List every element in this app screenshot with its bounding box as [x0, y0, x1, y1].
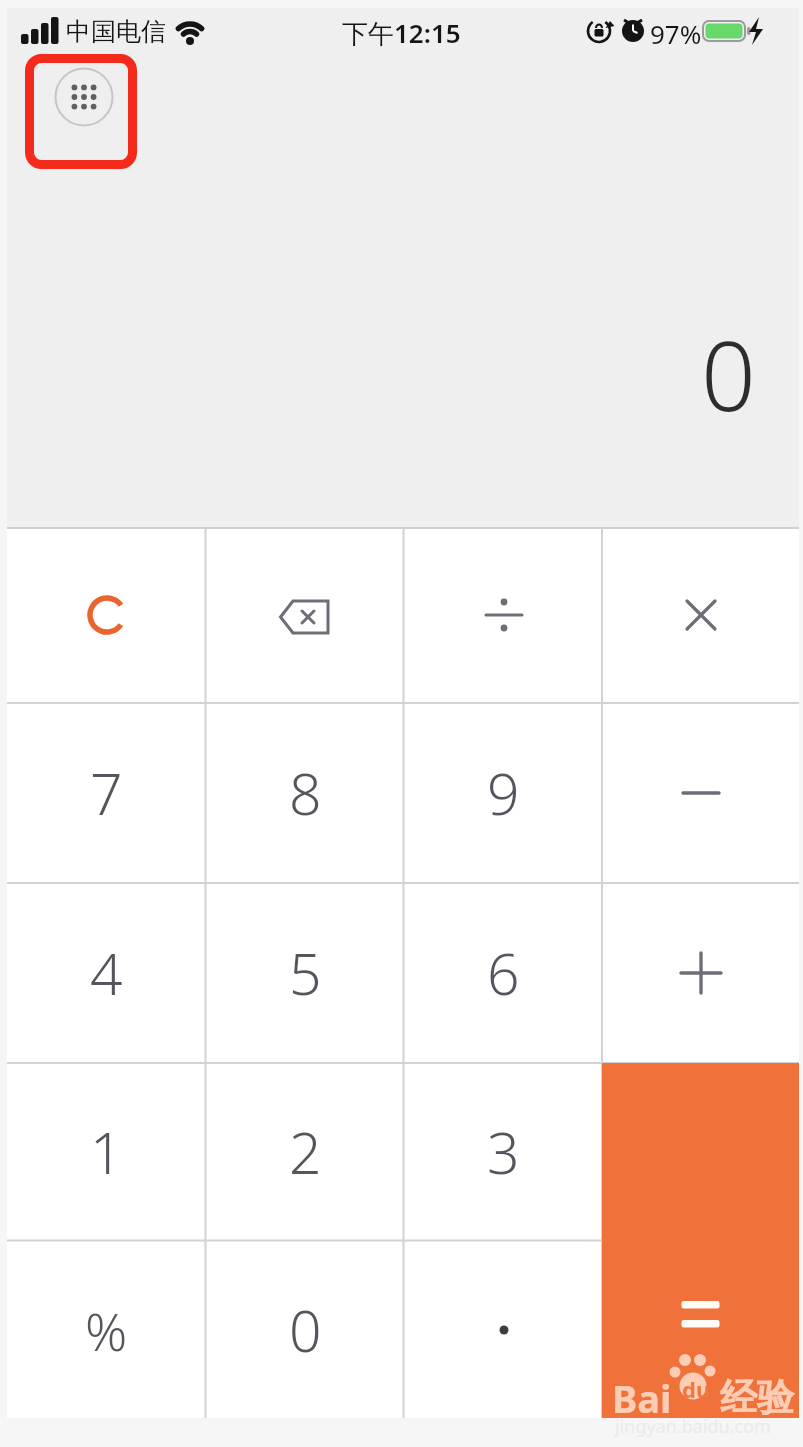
staticText: 8: [289, 754, 322, 832]
staticText: 0: [701, 308, 756, 430]
button[interactable]: [602, 883, 799, 1063]
staticText: 6: [487, 934, 520, 1012]
button[interactable]: 4: [7, 883, 206, 1063]
staticText: 4: [90, 934, 123, 1012]
button[interactable]: [7, 527, 206, 703]
staticText: 5: [289, 934, 322, 1012]
button[interactable]: [602, 703, 799, 883]
staticText: 中国电信: [66, 16, 166, 47]
button[interactable]: [25, 54, 137, 169]
staticText: jingyan.baidu.com: [615, 1414, 771, 1439]
staticText: 3: [487, 1113, 520, 1191]
button[interactable]: [206, 527, 404, 707]
button[interactable]: 9: [404, 703, 603, 883]
button[interactable]: [404, 527, 603, 703]
staticText: Bai: [612, 1372, 672, 1424]
button[interactable]: 1: [7, 1063, 206, 1241]
button[interactable]: [602, 527, 799, 703]
button[interactable]: 7: [7, 703, 206, 883]
button[interactable]: 2: [206, 1063, 404, 1241]
button[interactable]: [602, 1063, 799, 1418]
staticText: 97%: [650, 16, 702, 51]
staticText: 2: [289, 1113, 322, 1191]
button[interactable]: 8: [206, 703, 404, 883]
button[interactable]: [404, 1241, 603, 1419]
staticText: 7: [90, 754, 123, 832]
staticText: 经验: [720, 1374, 794, 1421]
staticText: 1: [90, 1113, 123, 1191]
staticText: 下午12:15: [342, 15, 461, 47]
staticText: 9: [487, 754, 520, 832]
button[interactable]: 0: [206, 1241, 404, 1419]
staticText: du: [682, 1374, 711, 1404]
staticText: 0: [289, 1291, 322, 1369]
button[interactable]: %: [7, 1241, 206, 1419]
button[interactable]: 5: [206, 883, 404, 1063]
button[interactable]: 6: [404, 883, 603, 1063]
staticText: %: [85, 1295, 128, 1366]
button[interactable]: 3: [404, 1063, 603, 1241]
